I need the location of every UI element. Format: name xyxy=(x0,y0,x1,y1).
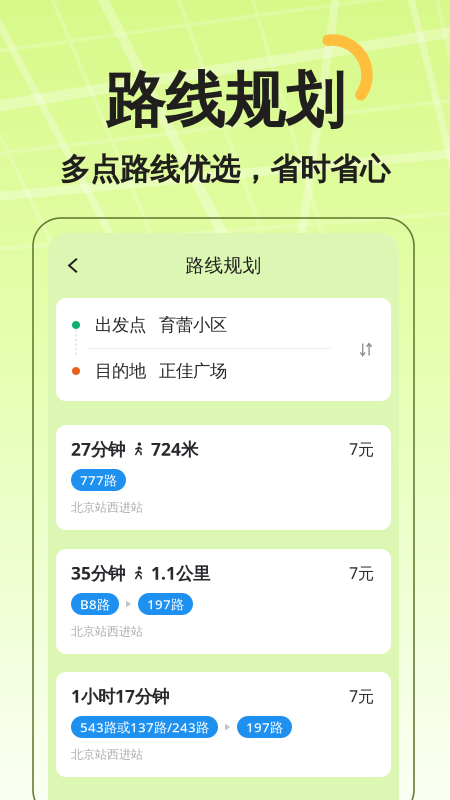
staticText: 35分钟 xyxy=(71,561,125,584)
staticText: 育蕾小区 xyxy=(159,314,227,336)
button[interactable]: 27分钟 xyxy=(56,425,391,530)
staticText: 路线规划 xyxy=(185,254,261,277)
staticText: 路线规划 xyxy=(105,63,345,139)
staticText: 多点路线优选，省时省心 xyxy=(60,151,390,189)
staticText: 正佳广场 xyxy=(159,360,227,382)
staticText: 777路 xyxy=(80,471,117,489)
staticText: 目的地 xyxy=(95,360,146,382)
staticText: 北京站西进站 xyxy=(71,747,143,762)
staticText: 7元 xyxy=(349,438,374,460)
button[interactable]: 1小时17分钟 xyxy=(56,672,391,777)
staticText: 724米 xyxy=(151,437,198,460)
staticText: 北京站西进站 xyxy=(71,624,143,639)
staticText: 1.1公里 xyxy=(151,561,210,584)
staticText: 7元 xyxy=(349,685,374,707)
staticText: 1小时17分钟 xyxy=(71,684,169,707)
staticText: 北京站西进站 xyxy=(71,500,143,515)
staticText: 197路 xyxy=(147,595,184,613)
staticText: 出发点 xyxy=(95,314,146,336)
staticText: 27分钟 xyxy=(71,437,125,460)
staticText: 197路 xyxy=(246,718,283,736)
button[interactable]: 交换起终点 xyxy=(349,329,383,369)
button[interactable]: 返回 xyxy=(56,242,90,288)
staticText: 7元 xyxy=(349,562,374,584)
staticText: 543路或137路/243路 xyxy=(80,718,209,736)
staticText: B8路 xyxy=(80,595,110,613)
button[interactable]: 35分钟 xyxy=(56,549,391,654)
